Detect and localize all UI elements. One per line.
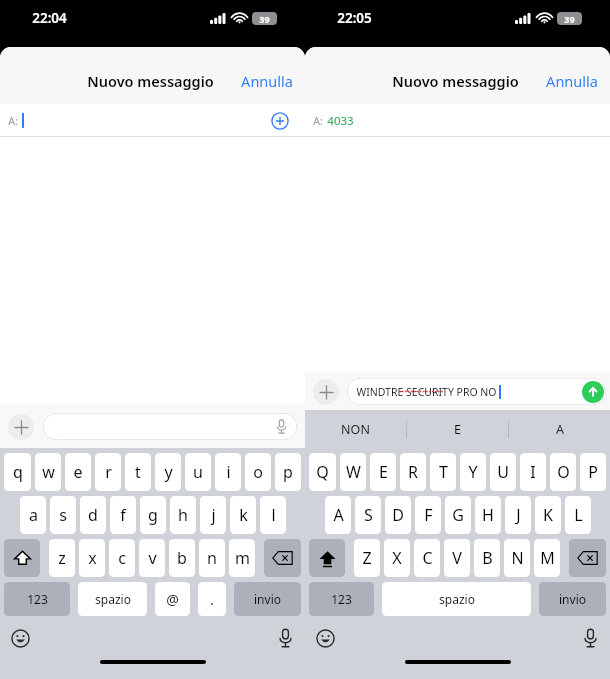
- button[interactable]: V: [444, 539, 470, 577]
- button[interactable]: R: [400, 453, 426, 491]
- staticText: k: [239, 504, 248, 526]
- button[interactable]: Emoji: [314, 627, 336, 649]
- button[interactable]: b: [169, 539, 195, 577]
- staticText: invio: [559, 591, 586, 607]
- button[interactable]: [43, 413, 297, 440]
- button[interactable]: invio: [539, 582, 606, 616]
- button[interactable]: q: [4, 453, 31, 491]
- staticText: Annulla: [241, 71, 293, 91]
- button[interactable]: f: [110, 496, 136, 534]
- button[interactable]: C: [414, 539, 440, 577]
- button[interactable]: c: [109, 539, 135, 577]
- button[interactable]: r: [95, 453, 121, 491]
- button[interactable]: Y: [460, 453, 486, 491]
- button[interactable]: H: [475, 496, 501, 534]
- staticText: F: [424, 504, 433, 526]
- button[interactable]: Invia: [582, 381, 604, 403]
- button[interactable]: W: [340, 453, 366, 491]
- button[interactable]: 123: [309, 582, 374, 616]
- button[interactable]: X: [384, 539, 410, 577]
- button[interactable]: Aggiungi contatto: [267, 108, 293, 134]
- button[interactable]: a: [20, 496, 46, 534]
- button[interactable]: n: [199, 539, 225, 577]
- button[interactable]: P: [580, 453, 606, 491]
- button[interactable]: j: [200, 496, 226, 534]
- button[interactable]: d: [80, 496, 106, 534]
- button[interactable]: Z: [354, 539, 380, 577]
- button[interactable]: F: [415, 496, 441, 534]
- button[interactable]: spazio: [382, 582, 531, 616]
- button[interactable]: o: [245, 453, 271, 491]
- staticText: r: [105, 461, 112, 483]
- button[interactable]: spazio: [78, 582, 147, 616]
- button[interactable]: O: [550, 453, 576, 491]
- staticText: 123: [27, 591, 48, 607]
- button[interactable]: i: [215, 453, 241, 491]
- staticText: u: [193, 461, 203, 483]
- staticText: o: [253, 461, 263, 483]
- button[interactable]: .: [198, 582, 226, 616]
- staticText: c: [118, 547, 126, 569]
- button[interactable]: m: [229, 539, 255, 577]
- button[interactable]: s: [50, 496, 76, 534]
- button[interactable]: WINDTRE SECURITY PRO NO: [347, 378, 606, 405]
- button[interactable]: L: [565, 496, 591, 534]
- staticText: G: [452, 504, 464, 526]
- button[interactable]: Altro: [313, 379, 339, 405]
- button[interactable]: g: [140, 496, 166, 534]
- button[interactable]: Cancella: [264, 539, 301, 577]
- button[interactable]: Annulla: [229, 65, 305, 97]
- button[interactable]: w: [35, 453, 61, 491]
- button[interactable]: Q: [309, 453, 336, 491]
- button[interactable]: B: [474, 539, 500, 577]
- staticText: w: [42, 461, 55, 483]
- button[interactable]: l: [260, 496, 286, 534]
- button[interactable]: Altro: [8, 414, 34, 440]
- button[interactable]: Emoji: [9, 627, 31, 649]
- button[interactable]: Maiuscole: [4, 539, 40, 577]
- button[interactable]: Annulla: [534, 65, 610, 97]
- button[interactable]: Dettatura: [274, 627, 296, 649]
- button[interactable]: K: [535, 496, 561, 534]
- button[interactable]: h: [170, 496, 196, 534]
- button[interactable]: A: [325, 496, 351, 534]
- button[interactable]: t: [125, 453, 151, 491]
- button[interactable]: y: [155, 453, 181, 491]
- staticText: Q: [316, 461, 329, 483]
- button[interactable]: v: [139, 539, 165, 577]
- button[interactable]: Maiuscole: [309, 539, 345, 577]
- button[interactable]: E: [370, 453, 396, 491]
- staticText: f: [120, 504, 126, 526]
- button[interactable]: T: [430, 453, 456, 491]
- button[interactable]: M: [534, 539, 560, 577]
- button[interactable]: Cancella: [569, 539, 606, 577]
- button[interactable]: k: [230, 496, 256, 534]
- button[interactable]: u: [185, 453, 211, 491]
- button[interactable]: 123: [4, 582, 70, 616]
- button[interactable]: x: [79, 539, 105, 577]
- button[interactable]: S: [355, 496, 381, 534]
- button[interactable]: invio: [234, 582, 301, 616]
- staticText: b: [177, 547, 187, 569]
- button[interactable]: z: [49, 539, 75, 577]
- button[interactable]: D: [385, 496, 411, 534]
- button[interactable]: Dettatura: [579, 627, 601, 649]
- button[interactable]: p: [275, 453, 301, 491]
- button[interactable]: NON: [305, 410, 406, 448]
- button[interactable]: G: [445, 496, 471, 534]
- staticText: L: [574, 504, 583, 526]
- button[interactable]: N: [504, 539, 530, 577]
- staticText: .: [210, 590, 214, 609]
- button[interactable]: @: [155, 582, 190, 616]
- button[interactable]: U: [490, 453, 516, 491]
- button[interactable]: J: [505, 496, 531, 534]
- staticText: m: [235, 547, 250, 569]
- staticText: 22:04: [32, 9, 67, 27]
- staticText: d: [88, 504, 98, 526]
- button[interactable]: I: [520, 453, 546, 491]
- staticText: NON: [341, 421, 370, 438]
- button[interactable]: e: [65, 453, 91, 491]
- button[interactable]: E: [407, 410, 508, 448]
- button[interactable]: A: [509, 410, 610, 448]
- staticText: Nuovo messaggio: [392, 71, 519, 91]
